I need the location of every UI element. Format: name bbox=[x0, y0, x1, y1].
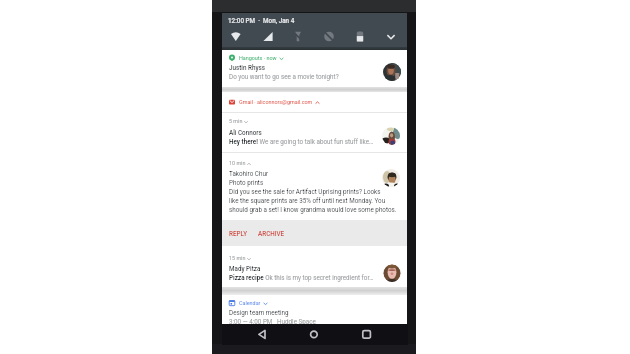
button[interactable]: Calendar bbox=[222, 300, 407, 306]
button[interactable]: Recent apps bbox=[356, 324, 376, 345]
staticText: Pizza recipe Ok this is my top secret in… bbox=[229, 274, 379, 281]
button[interactable]: Contact photo bbox=[383, 63, 401, 81]
button[interactable]: Gmail · aliconnors@gmail.com bbox=[222, 99, 407, 105]
button[interactable]: Back bbox=[252, 324, 272, 345]
staticText: Gmail · aliconnors@gmail.com bbox=[239, 99, 313, 105]
staticText: Did you see the sale for Artifact Uprisi… bbox=[229, 188, 404, 214]
staticText: Photo prints bbox=[229, 179, 264, 186]
staticText: Ali Connors bbox=[229, 129, 262, 136]
button[interactable]: Hangouts · now bbox=[222, 55, 407, 61]
staticText: Takohiro Chur bbox=[229, 170, 269, 177]
button[interactable]: REPLY bbox=[222, 220, 255, 246]
button[interactable]: Contact photo bbox=[382, 127, 400, 145]
staticText: 3:00 — 4:00 PM Huddle Space bbox=[229, 318, 316, 325]
staticText: 5 min bbox=[229, 118, 243, 124]
staticText: 12:00 PM · Mon, Jan 4 bbox=[228, 17, 295, 24]
button[interactable] bbox=[222, 295, 407, 324]
button[interactable] bbox=[222, 92, 407, 287]
button[interactable]: Home bbox=[304, 324, 324, 345]
staticText: REPLY bbox=[229, 230, 248, 237]
staticText: 10 min bbox=[229, 160, 246, 166]
staticText: Calendar bbox=[239, 300, 261, 306]
button[interactable]: ARCHIVE bbox=[252, 220, 291, 246]
staticText: Justin Rhyss bbox=[229, 64, 266, 71]
button[interactable]: Contact photo bbox=[382, 169, 400, 187]
staticText: Design team meeting bbox=[229, 309, 289, 316]
staticText: Mady Pitza bbox=[229, 265, 261, 272]
staticText: Hey there! We are going to talk about fu… bbox=[229, 138, 377, 145]
staticText: Do you want to go see a movie tonight? bbox=[229, 73, 339, 80]
button[interactable] bbox=[222, 50, 407, 87]
button[interactable]: Contact photo bbox=[383, 264, 401, 282]
staticText: 15 min bbox=[229, 255, 246, 261]
staticText: Hangouts · now bbox=[239, 55, 277, 61]
staticText: ARCHIVE bbox=[258, 230, 285, 237]
